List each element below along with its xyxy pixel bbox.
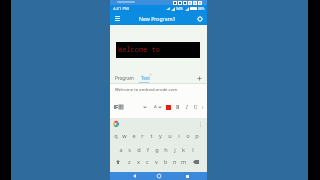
staticText: 4:21 PM	[113, 6, 129, 12]
staticText: n	[173, 158, 177, 166]
staticText: m	[181, 158, 187, 166]
button[interactable]: Welcome to	[116, 42, 200, 58]
button[interactable]: I	[186, 104, 188, 111]
staticText: k	[182, 146, 185, 154]
button[interactable]: a	[116, 143, 125, 156]
staticText: ⋮	[198, 121, 203, 127]
staticText: x	[137, 158, 140, 166]
staticText: b	[164, 158, 168, 166]
staticText: f	[147, 146, 149, 154]
button[interactable]: d	[134, 143, 143, 156]
button[interactable]: Home	[153, 172, 165, 180]
staticText: A	[154, 104, 157, 110]
button[interactable]: x	[134, 156, 143, 168]
button[interactable]: Backspace	[188, 156, 203, 168]
button[interactable]: Add	[196, 75, 203, 82]
button[interactable]: Text	[141, 75, 150, 81]
button[interactable]: U	[194, 104, 198, 111]
button[interactable]: v	[152, 156, 161, 168]
button[interactable]: w	[120, 129, 129, 143]
staticText: r	[141, 132, 144, 140]
staticText: c	[146, 158, 149, 166]
button[interactable]: B	[176, 104, 180, 111]
button[interactable]: Shift	[110, 156, 125, 168]
staticText: 88%	[198, 7, 205, 11]
button[interactable]: g	[152, 143, 161, 156]
staticText: o	[186, 132, 190, 140]
staticText: t	[150, 132, 153, 140]
staticText: p	[195, 132, 199, 140]
staticText: d	[137, 146, 141, 154]
staticText: y	[159, 132, 162, 140]
button[interactable]: Back	[128, 172, 140, 180]
staticText: v	[155, 158, 158, 166]
staticText: i	[178, 132, 180, 140]
staticText: l	[192, 146, 194, 154]
button[interactable]: j	[170, 143, 179, 156]
button[interactable]: y	[156, 129, 165, 143]
button[interactable]: c	[143, 156, 152, 168]
button[interactable]: z	[125, 156, 134, 168]
button[interactable]: q	[111, 129, 120, 143]
staticText: Welcome to android-erode.com	[115, 87, 178, 93]
staticText: s	[128, 146, 131, 154]
button[interactable]: o	[183, 129, 192, 143]
staticText: j	[174, 146, 176, 154]
button[interactable]: f	[143, 143, 152, 156]
button[interactable]	[114, 105, 118, 109]
button[interactable]: u	[165, 129, 174, 143]
button[interactable]: e	[129, 129, 138, 143]
button[interactable]: t	[147, 129, 156, 143]
button[interactable]: s	[125, 143, 134, 156]
staticText: h	[164, 146, 168, 154]
button[interactable]: Program	[115, 75, 134, 81]
staticText: ›	[202, 104, 204, 111]
button[interactable]: l	[188, 143, 197, 156]
staticText: New Program1	[139, 15, 176, 22]
staticText: e	[132, 132, 136, 140]
staticText: g	[155, 146, 159, 154]
staticText: Welcome to	[118, 45, 160, 55]
staticText: z	[128, 158, 131, 166]
button[interactable]: Google	[113, 121, 119, 127]
button[interactable]: Recents	[181, 172, 193, 180]
button[interactable]: m	[179, 156, 188, 168]
button[interactable]: p	[192, 129, 201, 143]
button[interactable]: k	[179, 143, 188, 156]
button[interactable]	[119, 105, 123, 109]
staticText: q	[114, 132, 118, 140]
button[interactable]: Settings	[197, 16, 203, 22]
button[interactable]: Menu	[115, 16, 120, 21]
button[interactable]: h	[161, 143, 170, 156]
button[interactable]: b	[161, 156, 170, 168]
staticText: 94%	[176, 6, 184, 11]
staticText: a	[119, 146, 123, 154]
button[interactable]: i	[174, 129, 183, 143]
button[interactable]: n	[170, 156, 179, 168]
staticText: u	[168, 132, 172, 140]
staticText: w	[122, 132, 127, 140]
button[interactable]: r	[138, 129, 147, 143]
